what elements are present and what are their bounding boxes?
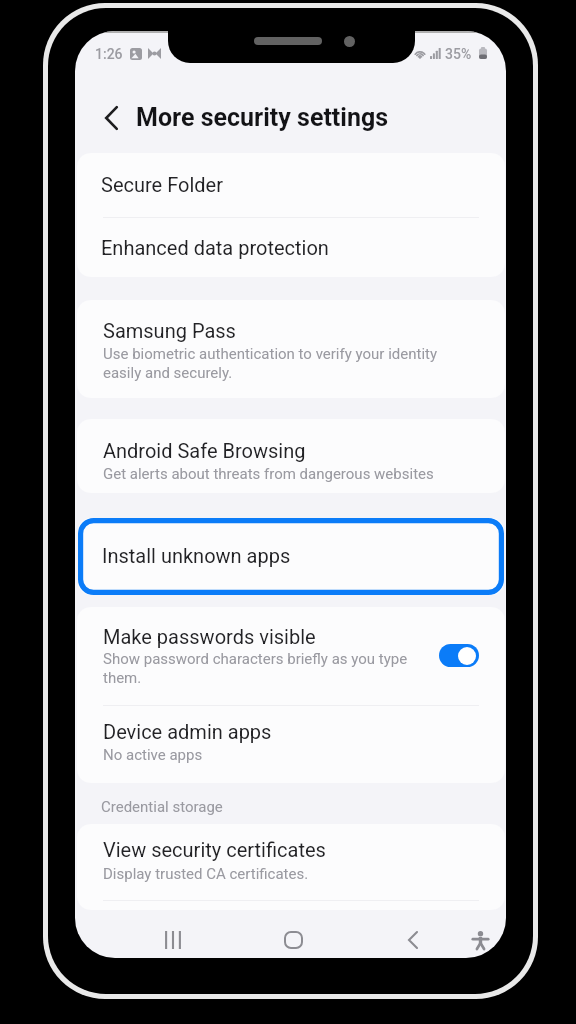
button[interactable]: Back <box>353 917 473 958</box>
staticText: 35% <box>445 46 472 62</box>
button[interactable]: Install unknown apps <box>78 518 504 595</box>
staticText: 1:26 <box>95 46 123 62</box>
staticText: Use biometric authentication to verify y… <box>103 345 448 382</box>
staticText: Samsung Pass <box>103 319 236 342</box>
staticText: View security certificates <box>103 838 326 861</box>
staticText: More security settings <box>136 103 389 132</box>
button[interactable]: Home <box>233 917 353 958</box>
button[interactable]: Samsung Pass <box>77 300 505 398</box>
button[interactable]: Navigate up <box>93 100 129 136</box>
staticText: Secure Folder <box>101 173 223 196</box>
button[interactable]: Enhanced data protection <box>77 217 505 277</box>
button[interactable]: Android Safe Browsing <box>77 419 505 493</box>
button[interactable]: Make passwords visible <box>77 607 505 705</box>
staticText: Make passwords visible <box>103 625 316 648</box>
button[interactable]: Device admin apps <box>77 705 505 783</box>
staticText: Show password characters briefly as you … <box>103 650 423 687</box>
staticText: Credential storage <box>101 798 223 816</box>
staticText: Enhanced data protection <box>101 236 329 259</box>
button[interactable]: Secure Folder <box>77 153 505 217</box>
button[interactable]: Accessibility <box>450 917 506 958</box>
button[interactable]: Recent apps <box>113 917 233 958</box>
staticText: Get alerts about threats from dangerous … <box>103 465 434 483</box>
staticText: Install unknown apps <box>102 544 291 567</box>
button[interactable]: View security certificates <box>77 824 505 910</box>
button[interactable]: Make passwords visible <box>439 644 479 667</box>
staticText: No active apps <box>103 746 203 764</box>
staticText: Device admin apps <box>103 720 272 743</box>
staticText: Android Safe Browsing <box>103 439 306 462</box>
staticText: Display trusted CA certificates. <box>103 865 309 883</box>
